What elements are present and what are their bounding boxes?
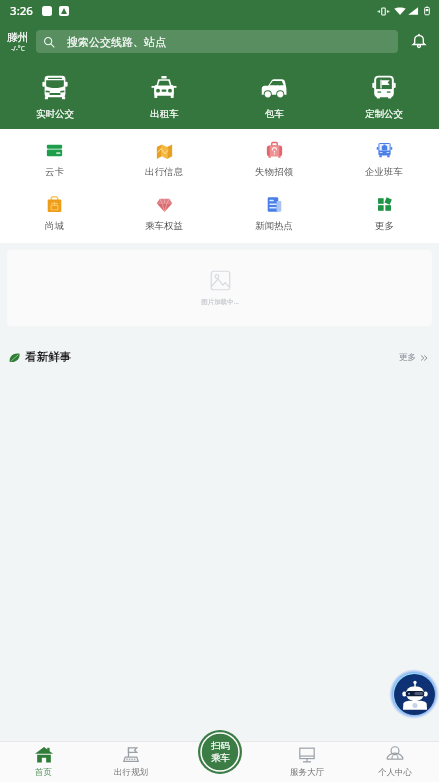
staticText: 图片加载中... [201, 297, 239, 306]
staticText: 更多 [399, 352, 416, 363]
staticText: -/-°C [11, 44, 25, 53]
staticText: 云卡 [45, 166, 64, 178]
button[interactable]: 云卡 [0, 142, 109, 178]
button[interactable]: 包车 [219, 60, 329, 120]
staticText: 看新鲜事 [25, 350, 71, 364]
button[interactable]: 通知 [399, 22, 439, 60]
button[interactable]: 出租车 [109, 60, 219, 120]
staticText: 出租车 [150, 108, 179, 120]
button[interactable]: 服务大厅 [263, 746, 351, 778]
staticText: 更多 [375, 220, 394, 232]
button[interactable]: 尚城 [0, 196, 109, 232]
button[interactable]: 扫码 [198, 730, 242, 774]
button[interactable]: 智能助手 [389, 669, 439, 719]
button[interactable]: 实时公交 [0, 60, 109, 120]
staticText: 首页 [35, 767, 52, 778]
button[interactable]: 首页 [0, 746, 87, 778]
button[interactable]: 更多 [329, 196, 439, 232]
button[interactable]: 更多 [399, 349, 428, 366]
button[interactable]: 定制公交 [329, 60, 439, 120]
staticText: 定制公交 [365, 108, 403, 120]
staticText: 出行规划 [114, 767, 148, 778]
staticText: 扫码 [211, 740, 230, 752]
button[interactable]: 出行信息 [109, 142, 219, 178]
staticText: 服务大厅 [290, 767, 324, 778]
staticText: 乘车权益 [145, 220, 183, 232]
staticText: 包车 [265, 108, 284, 120]
button[interactable]: 滕州 [2, 30, 34, 53]
button[interactable]: 乘车权益 [109, 196, 219, 232]
staticText: 3:26 [10, 3, 33, 19]
button[interactable]: 新闻热点 [219, 196, 329, 232]
staticText: 滕州 [7, 30, 29, 44]
staticText: 企业班车 [365, 166, 403, 178]
staticText: 新闻热点 [255, 220, 293, 232]
staticText: 尚城 [45, 220, 64, 232]
button[interactable]: 个人中心 [351, 746, 439, 778]
staticText: 乘车 [211, 752, 230, 764]
staticText: 失物招领 [255, 166, 293, 178]
button[interactable]: 出行规划 [87, 746, 175, 778]
staticText: 实时公交 [36, 108, 74, 120]
staticText: 个人中心 [378, 767, 412, 778]
button[interactable]: 失物招领 [219, 142, 329, 178]
staticText: 出行信息 [145, 166, 183, 178]
button[interactable]: 企业班车 [329, 142, 439, 178]
button[interactable]: 搜索公交线路、站点 [36, 30, 398, 53]
staticText: 搜索公交线路、站点 [67, 35, 166, 49]
